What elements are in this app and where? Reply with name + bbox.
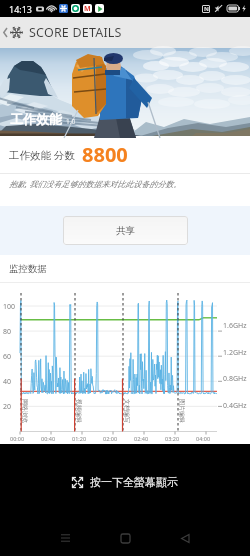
staticText: 0.8GHz <box>223 374 247 384</box>
staticText: 0.4GHz <box>223 401 247 411</box>
staticText: M <box>84 4 91 13</box>
staticText: 工作效能 <box>10 111 62 127</box>
staticText: 40 <box>3 377 12 387</box>
staticText: 图片编辑 <box>178 399 186 423</box>
staticText: 04:00 <box>196 435 211 442</box>
staticText: 8800 <box>82 141 128 168</box>
staticText: 监控数据 <box>9 263 47 275</box>
staticText: 视频编辑 <box>75 399 83 423</box>
staticText: 工作效能 分数 <box>9 148 75 162</box>
staticText: SCORE DETAILS <box>29 24 122 41</box>
staticText: 60 <box>3 352 12 362</box>
staticText: 抱歉, 我们没有足够的数据来对比此设备的分数。 <box>9 178 182 189</box>
button[interactable]: 共享 <box>63 216 188 245</box>
staticText: 1.2GHz <box>223 348 247 358</box>
staticText: 文档编写 <box>123 399 131 423</box>
button[interactable]: Back <box>165 520 205 556</box>
staticText: N <box>204 5 209 13</box>
staticText: 02:40 <box>134 435 149 442</box>
staticText: 100 <box>3 302 16 312</box>
staticText: 1.6GHz <box>223 321 247 331</box>
button[interactable]: Home <box>105 520 145 556</box>
button[interactable]: Back <box>0 17 10 48</box>
staticText: 按一下全螢幕顯示 <box>90 475 178 489</box>
staticText: 14:13 <box>9 3 33 15</box>
staticText: 03:20 <box>165 435 180 442</box>
staticText: 20 <box>3 402 12 412</box>
button[interactable]: 按一下全螢幕顯示 <box>0 444 250 520</box>
button[interactable]: Recents <box>45 520 85 556</box>
staticText: 1.0 <box>66 117 76 126</box>
staticText: 02:00 <box>103 435 118 442</box>
staticText: 00:40 <box>41 435 56 442</box>
staticText: 01:20 <box>72 435 87 442</box>
staticText: 80 <box>3 327 12 337</box>
staticText: 00:00 <box>10 435 25 442</box>
staticText: 网络浏览 <box>21 399 29 423</box>
staticText: 共享 <box>116 225 135 237</box>
